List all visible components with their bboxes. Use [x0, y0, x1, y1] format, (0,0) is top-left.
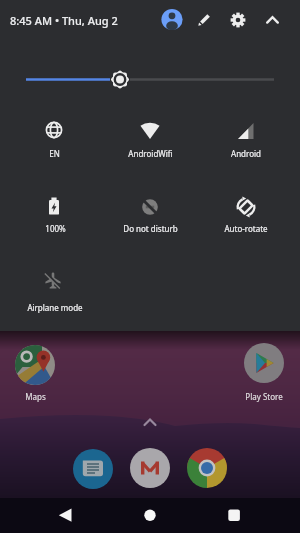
- button[interactable]: [260, 8, 284, 32]
- button[interactable]: [105, 112, 195, 184]
- button[interactable]: [45, 500, 85, 531]
- button[interactable]: [200, 188, 290, 260]
- staticText: Play Store: [245, 391, 283, 402]
- button[interactable]: [192, 8, 216, 32]
- staticText: 8:45 AM • Thu, Aug 2: [10, 13, 118, 28]
- button[interactable]: [130, 500, 170, 531]
- button[interactable]: [214, 500, 254, 531]
- staticText: AndroidWifi: [128, 148, 173, 159]
- staticText: Maps: [25, 391, 46, 402]
- staticText: Do not disturb: [123, 223, 178, 234]
- button[interactable]: [242, 342, 286, 400]
- button[interactable]: [9, 262, 99, 334]
- button[interactable]: [200, 112, 290, 184]
- button[interactable]: [138, 414, 162, 430]
- button[interactable]: [187, 448, 227, 488]
- button[interactable]: [73, 448, 113, 488]
- button[interactable]: [9, 188, 99, 260]
- button[interactable]: [13, 344, 57, 402]
- staticText: Auto-rotate: [224, 223, 268, 234]
- button[interactable]: [105, 188, 195, 260]
- button[interactable]: [14, 60, 286, 98]
- button[interactable]: [130, 448, 170, 488]
- button[interactable]: [160, 8, 184, 32]
- staticText: Android: [231, 148, 261, 159]
- staticText: Airplane mode: [27, 302, 83, 313]
- staticText: 100%: [45, 223, 66, 234]
- button[interactable]: [9, 112, 99, 184]
- staticText: EN: [49, 148, 60, 159]
- button[interactable]: [226, 8, 250, 32]
